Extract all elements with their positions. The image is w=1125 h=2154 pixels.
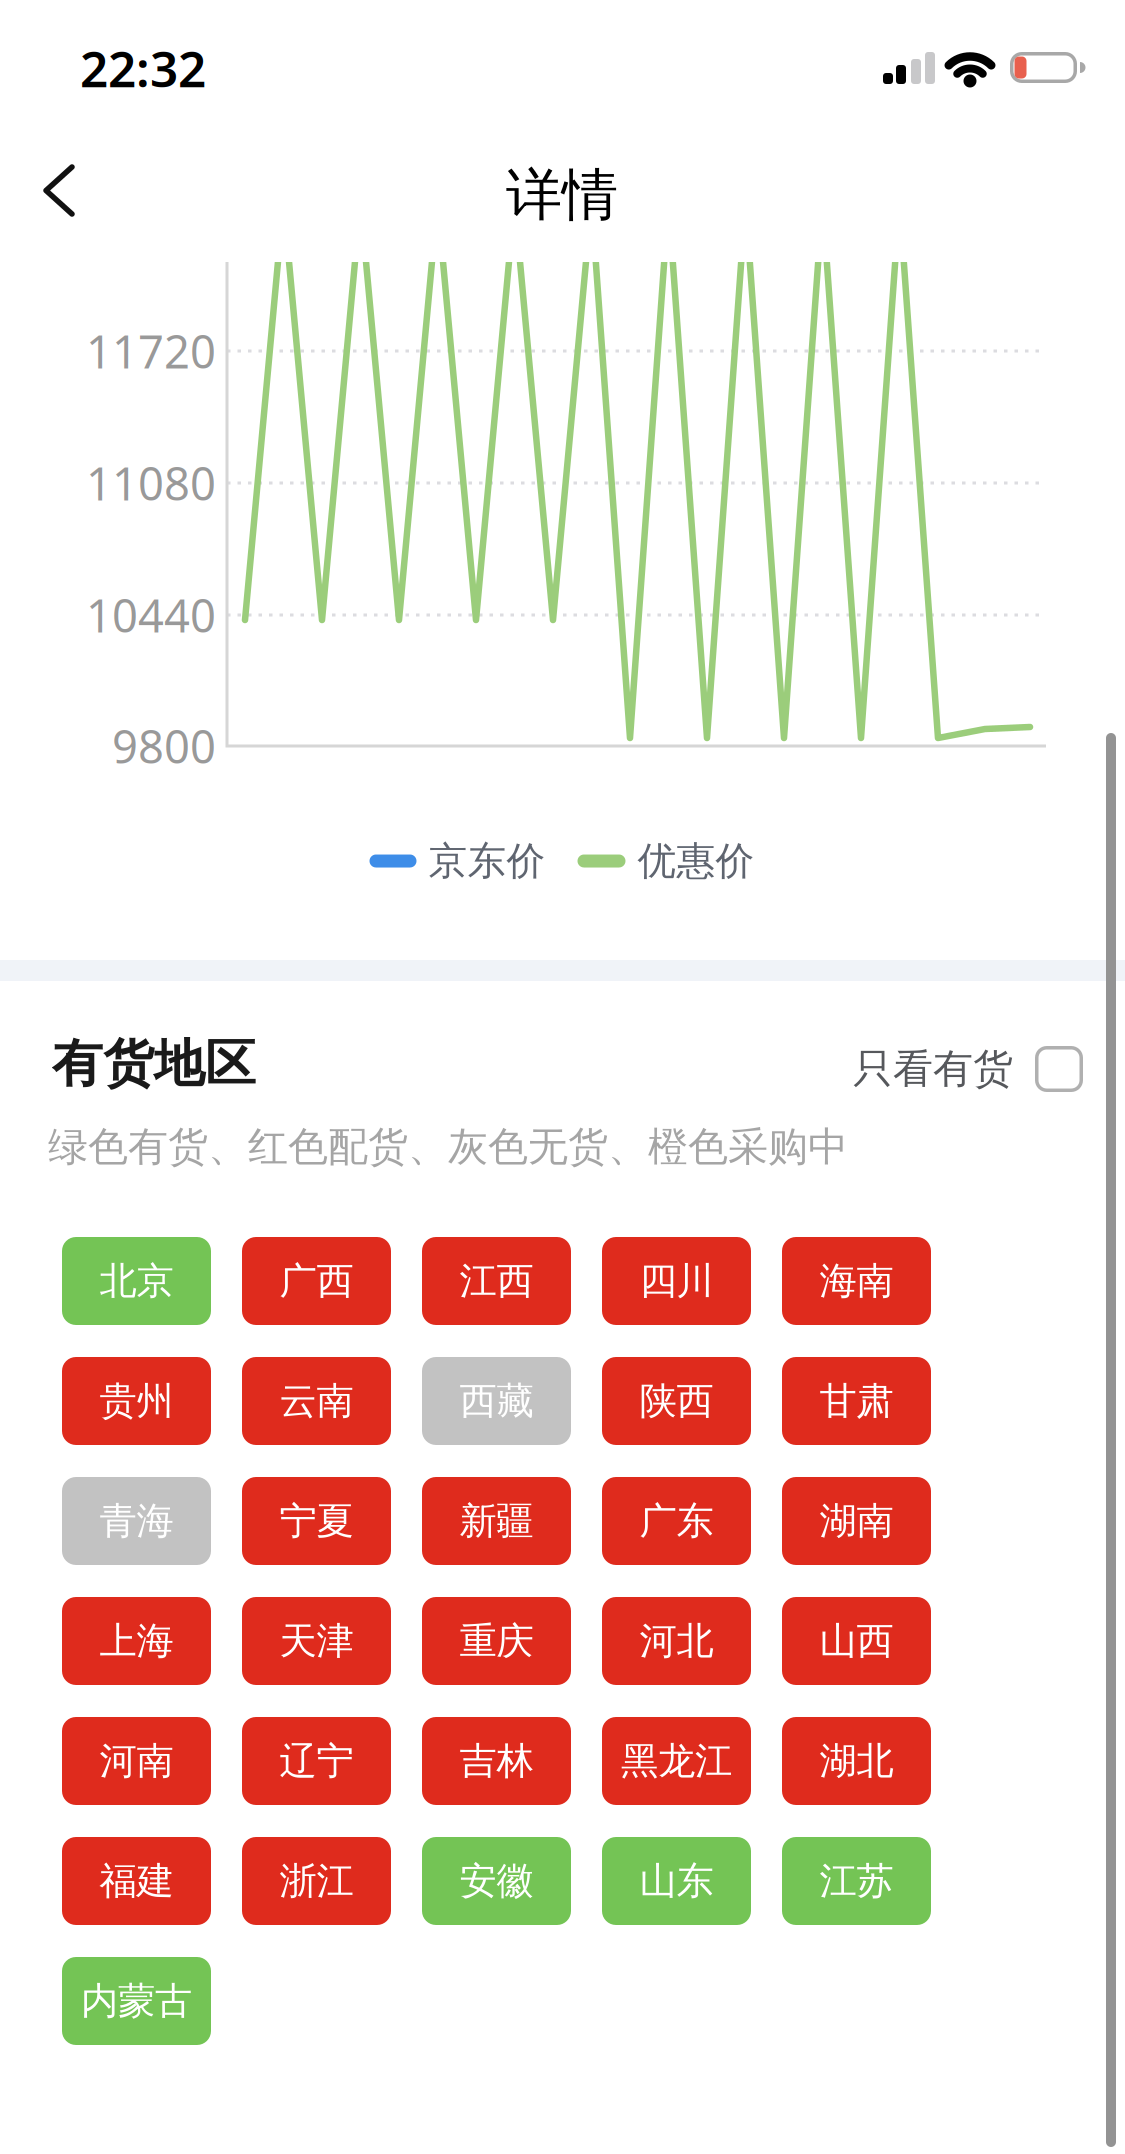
- staticText: 浙江: [279, 1858, 353, 1904]
- button[interactable]: 重庆: [422, 1597, 571, 1685]
- button[interactable]: 西藏: [422, 1357, 571, 1445]
- staticText: 江西: [459, 1258, 533, 1304]
- button[interactable]: 云南: [242, 1357, 391, 1445]
- staticText: 内蒙古: [81, 1978, 192, 2024]
- staticText: 11080: [86, 453, 216, 513]
- button[interactable]: 江苏: [782, 1837, 931, 1925]
- staticText: 广东: [639, 1498, 713, 1544]
- staticText: 优惠价: [637, 837, 754, 885]
- staticText: 上海: [99, 1618, 173, 1664]
- button[interactable]: 安徽: [422, 1837, 571, 1925]
- staticText: 青海: [99, 1498, 173, 1544]
- staticText: 11720: [86, 321, 216, 381]
- staticText: 北京: [99, 1258, 173, 1304]
- staticText: 详情: [506, 161, 618, 229]
- staticText: 辽宁: [279, 1738, 353, 1784]
- button[interactable]: 新疆: [422, 1477, 571, 1565]
- button[interactable]: 广东: [602, 1477, 751, 1565]
- staticText: 安徽: [459, 1858, 533, 1904]
- staticText: 山东: [639, 1858, 713, 1904]
- button[interactable]: 宁夏: [242, 1477, 391, 1565]
- staticText: 河南: [99, 1738, 173, 1784]
- staticText: 江苏: [819, 1858, 893, 1904]
- button[interactable]: 江西: [422, 1237, 571, 1325]
- staticText: 京东价: [428, 837, 545, 885]
- button[interactable]: 上海: [62, 1597, 211, 1685]
- button[interactable]: 陕西: [602, 1357, 751, 1445]
- button[interactable]: 山东: [602, 1837, 751, 1925]
- staticText: 吉林: [459, 1738, 533, 1784]
- staticText: 湖南: [819, 1498, 893, 1544]
- staticText: 绿色有货、红色配货、灰色无货、橙色采购中: [48, 1122, 848, 1171]
- button[interactable]: 福建: [62, 1837, 211, 1925]
- staticText: 四川: [639, 1258, 713, 1304]
- staticText: 贵州: [99, 1378, 173, 1424]
- button[interactable]: 湖北: [782, 1717, 931, 1805]
- button[interactable]: 黑龙江: [602, 1717, 751, 1805]
- button[interactable]: 内蒙古: [62, 1957, 211, 2045]
- staticText: 陕西: [639, 1378, 713, 1424]
- staticText: 9800: [112, 716, 216, 776]
- button[interactable]: Back: [0, 155, 94, 227]
- staticText: 云南: [279, 1378, 353, 1424]
- staticText: 22:32: [80, 35, 206, 101]
- staticText: 宁夏: [279, 1498, 353, 1544]
- staticText: 有货地区: [52, 1033, 256, 1095]
- button[interactable]: 浙江: [242, 1837, 391, 1925]
- staticText: 甘肃: [819, 1378, 893, 1424]
- staticText: 福建: [99, 1858, 173, 1904]
- button[interactable]: 青海: [62, 1477, 211, 1565]
- button[interactable]: 吉林: [422, 1717, 571, 1805]
- staticText: 山西: [819, 1618, 893, 1664]
- button[interactable]: 湖南: [782, 1477, 931, 1565]
- button[interactable]: 四川: [602, 1237, 751, 1325]
- staticText: 只看有货: [853, 1044, 1013, 1093]
- button[interactable]: 天津: [242, 1597, 391, 1685]
- staticText: 广西: [279, 1258, 353, 1304]
- staticText: 河北: [639, 1618, 713, 1664]
- staticText: 黑龙江: [621, 1738, 732, 1784]
- staticText: 湖北: [819, 1738, 893, 1784]
- button[interactable]: 河北: [602, 1597, 751, 1685]
- button[interactable]: 海南: [782, 1237, 931, 1325]
- button[interactable]: 辽宁: [242, 1717, 391, 1805]
- button[interactable]: 河南: [62, 1717, 211, 1805]
- button[interactable]: 贵州: [62, 1357, 211, 1445]
- staticText: 天津: [279, 1618, 353, 1664]
- button[interactable]: 广西: [242, 1237, 391, 1325]
- button[interactable]: 山西: [782, 1597, 931, 1685]
- button[interactable]: 北京: [62, 1237, 211, 1325]
- button[interactable]: 只看有货: [853, 1044, 1083, 1093]
- staticText: 重庆: [459, 1618, 533, 1664]
- button[interactable]: 甘肃: [782, 1357, 931, 1445]
- staticText: 海南: [819, 1258, 893, 1304]
- staticText: 新疆: [459, 1498, 533, 1544]
- staticText: 10440: [86, 585, 216, 645]
- staticText: 西藏: [459, 1378, 533, 1424]
